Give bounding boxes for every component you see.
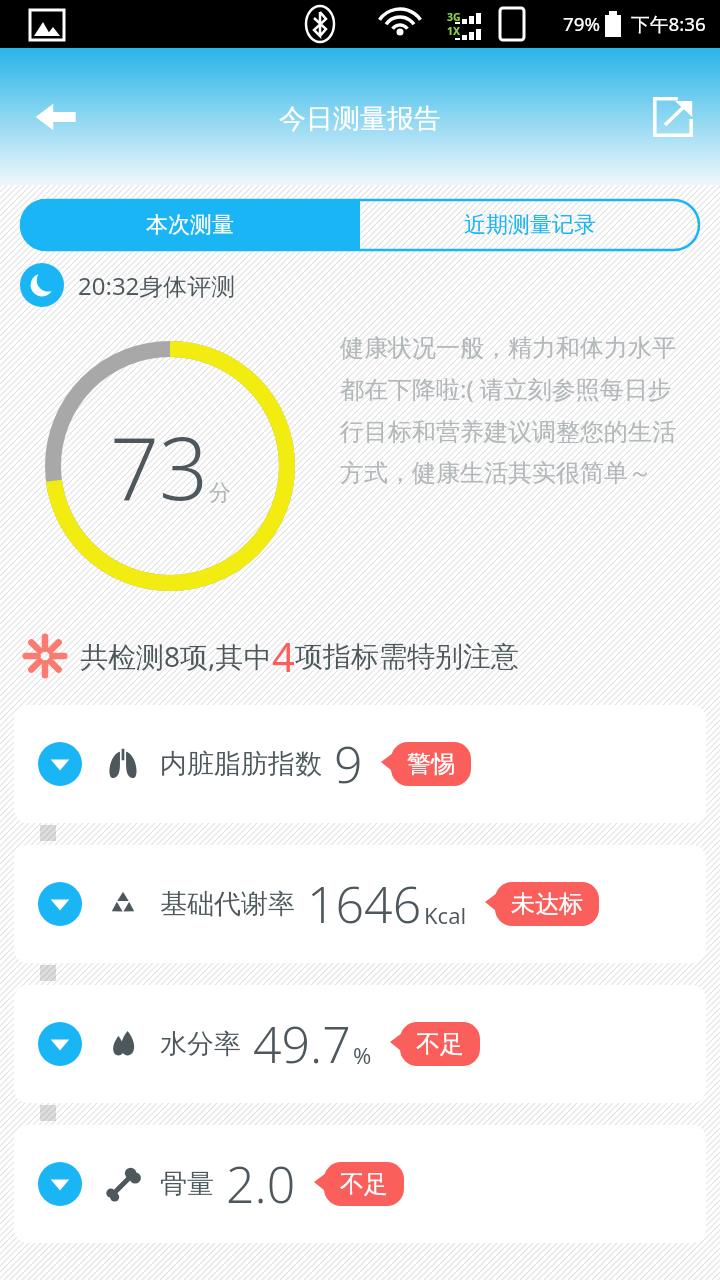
staticText: 不足 bbox=[340, 1169, 388, 1199]
staticText: 4 bbox=[272, 629, 295, 683]
staticText: 项指标需特别注意 bbox=[295, 639, 519, 674]
staticText: 2.0 bbox=[226, 1150, 296, 1218]
staticText: 49.7 bbox=[253, 1010, 351, 1078]
button[interactable]: 本次测量 bbox=[20, 199, 360, 251]
staticText: 近期测量记录 bbox=[464, 211, 596, 239]
staticText: 3G bbox=[447, 10, 461, 24]
staticText: 79% bbox=[563, 11, 601, 37]
staticText: 不足 bbox=[416, 1029, 464, 1059]
staticText: 基础代谢率 bbox=[160, 887, 295, 921]
button[interactable]: 近期测量记录 bbox=[360, 199, 700, 251]
staticText: 本次测量 bbox=[146, 211, 234, 239]
staticText: 分 bbox=[209, 479, 231, 507]
staticText: 共检测8项,其中 bbox=[80, 637, 272, 675]
staticText: 20:32身体评测 bbox=[78, 269, 236, 302]
staticText: 未达标 bbox=[511, 889, 583, 919]
staticText: 下午8:36 bbox=[631, 11, 706, 37]
button[interactable]: Back bbox=[26, 88, 84, 146]
staticText: % bbox=[353, 1040, 372, 1070]
staticText: 73 bbox=[110, 408, 209, 525]
staticText: 今日测量报告 bbox=[279, 102, 441, 136]
staticText: 1X bbox=[447, 24, 461, 38]
staticText: 健康状况一般，精力和体力水平都在下降啦:( 请立刻参照每日步行目标和营养建议调整… bbox=[340, 333, 694, 488]
staticText: 骨量 bbox=[160, 1167, 214, 1201]
button[interactable]: 骨量 bbox=[14, 1125, 706, 1243]
staticText: 警惕 bbox=[407, 749, 455, 779]
staticText: 内脏脂肪指数 bbox=[160, 747, 322, 781]
staticText: 水分率 bbox=[160, 1027, 241, 1061]
staticText: 1646 bbox=[307, 870, 422, 938]
button[interactable]: 基础代谢率 bbox=[14, 845, 706, 963]
staticText: Kcal bbox=[424, 900, 467, 930]
button[interactable]: Share bbox=[644, 88, 702, 146]
button[interactable]: 内脏脂肪指数 bbox=[14, 705, 706, 823]
staticText: 9 bbox=[334, 730, 363, 798]
button[interactable]: 水分率 bbox=[14, 985, 706, 1103]
